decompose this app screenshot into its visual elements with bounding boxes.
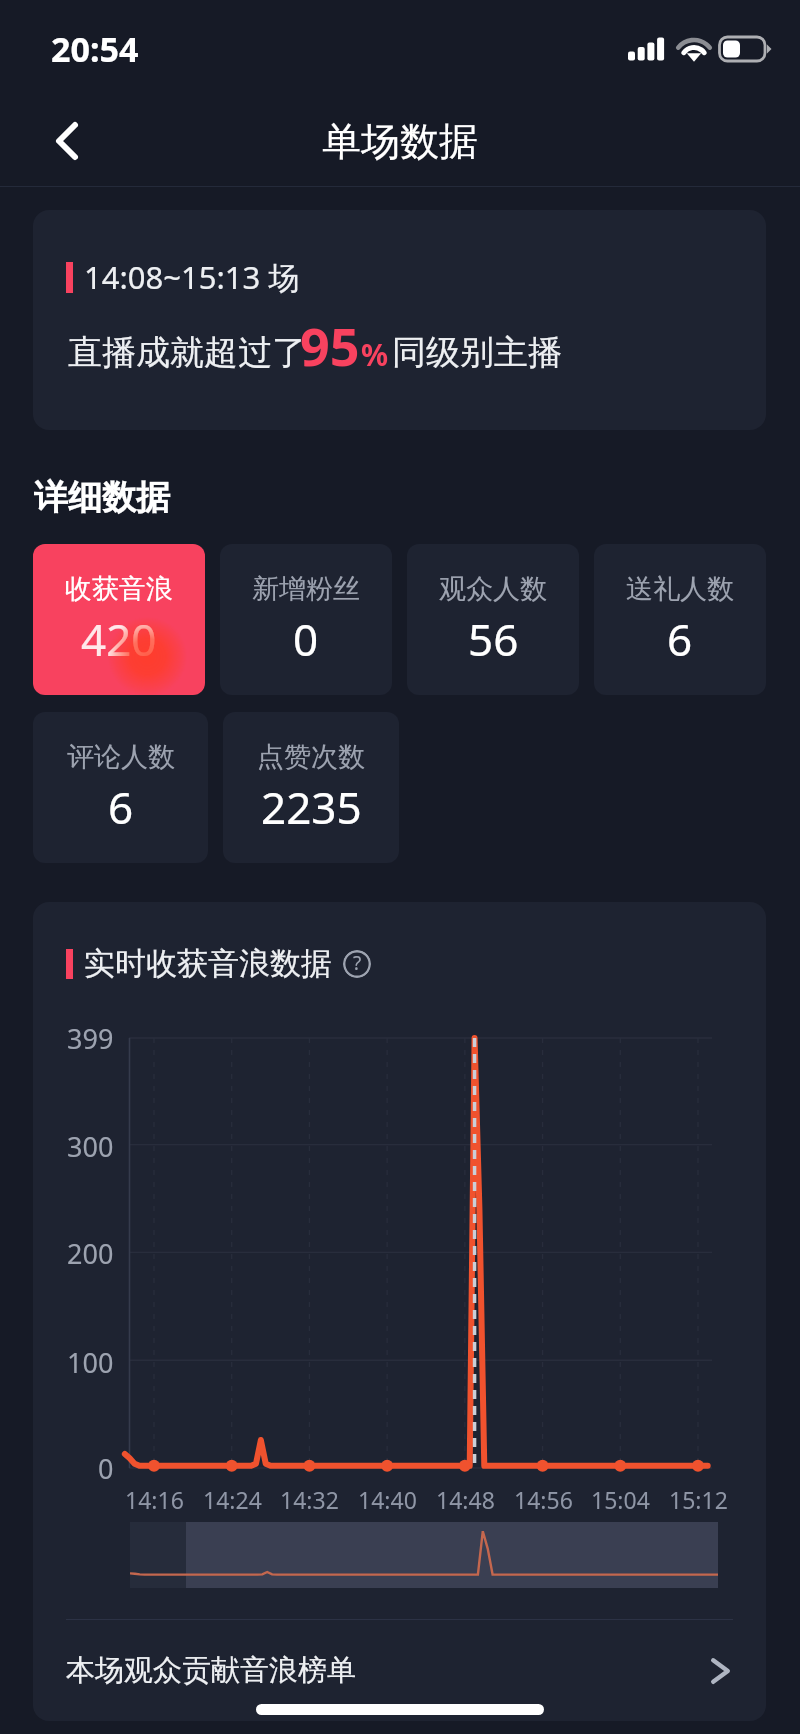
staticText: 14:08~15:13 场 (84, 256, 300, 298)
button[interactable]: 评论人数 (33, 712, 208, 863)
staticText: 100 (67, 1344, 114, 1380)
staticText: 新增粉丝 (252, 572, 360, 606)
staticText: 点赞次数 (257, 740, 365, 774)
staticText: 收获音浪 (65, 572, 173, 606)
staticText: 观众人数 (439, 572, 547, 606)
staticText: 14:32 (280, 1484, 339, 1515)
staticText: 评论人数 (67, 740, 175, 774)
staticText: ? (353, 950, 362, 976)
staticText: % (361, 334, 389, 375)
button[interactable]: Help (343, 950, 371, 978)
staticText: 15:04 (591, 1484, 650, 1515)
button[interactable]: Back (34, 96, 100, 186)
staticText: 同级别主播 (392, 331, 562, 374)
staticText: 本场观众贡献音浪榜单 (66, 1652, 356, 1689)
button[interactable]: 14:08~15:13 场 (33, 210, 766, 430)
staticText: 2235 (261, 777, 362, 837)
staticText: 95 (300, 310, 360, 381)
staticText: 420 (81, 609, 157, 669)
staticText: 单场数据 (322, 117, 478, 166)
staticText: 14:16 (125, 1484, 184, 1515)
staticText: 0 (98, 1450, 114, 1486)
staticText: 0 (293, 609, 319, 669)
button[interactable]: 送礼人数 (594, 544, 766, 695)
button[interactable]: 观众人数 (407, 544, 579, 695)
staticText: 6 (667, 609, 693, 669)
staticText: 15:12 (669, 1484, 728, 1515)
staticText: 送礼人数 (626, 572, 734, 606)
staticText: 实时收获音浪数据 (84, 944, 332, 983)
staticText: 56 (468, 609, 519, 669)
staticText: 14:56 (514, 1484, 573, 1515)
button[interactable]: 收获音浪 (33, 544, 205, 695)
staticText: 399 (67, 1020, 114, 1056)
button[interactable]: 点赞次数 (223, 712, 399, 863)
staticText: 6 (108, 777, 134, 837)
staticText: 20:54 (51, 26, 139, 72)
staticText: 14:24 (203, 1484, 262, 1515)
button[interactable]: 本场观众贡献音浪榜单 (33, 1620, 766, 1721)
staticText: 200 (67, 1235, 114, 1271)
button[interactable]: 新增粉丝 (220, 544, 392, 695)
staticText: 直播成就超过了 (68, 331, 306, 374)
staticText: 14:40 (358, 1484, 417, 1515)
staticText: 300 (67, 1128, 114, 1164)
staticText: 14:48 (436, 1484, 495, 1515)
staticText: 详细数据 (34, 476, 170, 519)
